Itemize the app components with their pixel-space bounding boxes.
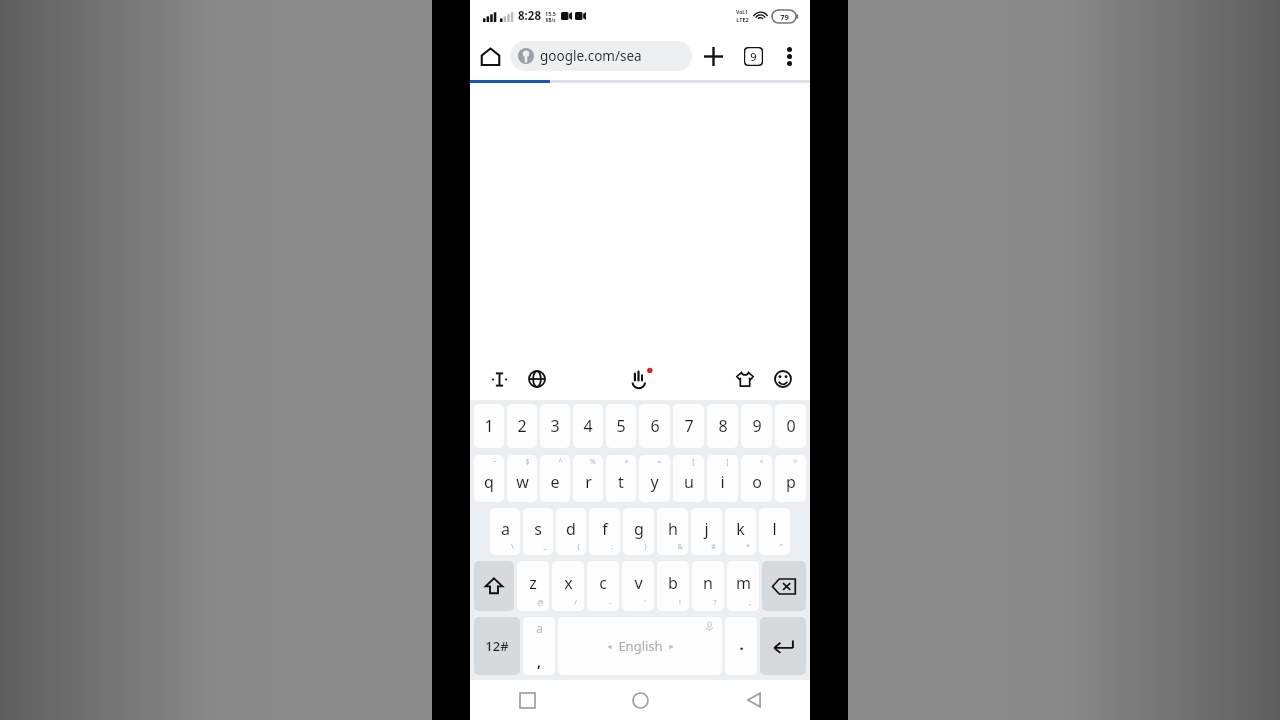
staticText: . (739, 634, 744, 654)
button[interactable]: s (523, 508, 553, 555)
staticText: \ (511, 542, 514, 552)
button[interactable]: New tab (692, 35, 734, 77)
button[interactable]: More options (772, 39, 806, 73)
staticText: 9 (750, 49, 757, 64)
button[interactable]: 1 (474, 404, 504, 448)
button[interactable]: a (490, 508, 520, 555)
staticText: $ (525, 457, 530, 467)
button[interactable]: Tabs: 9 (734, 37, 772, 75)
button[interactable]: Home (584, 680, 697, 720)
staticText: u (684, 471, 694, 493)
button[interactable]: Recents (470, 680, 584, 720)
staticText: ( (577, 542, 580, 552)
button[interactable]: k (725, 508, 756, 555)
staticText: r (585, 471, 592, 493)
button[interactable]: Handwriting (624, 362, 658, 396)
staticText: b (668, 572, 678, 594)
staticText: ; (749, 598, 751, 608)
button[interactable]: m (727, 561, 759, 611)
staticText: < (759, 457, 764, 467)
staticText: [ (692, 457, 695, 467)
button[interactable]: n (692, 561, 724, 611)
button[interactable]: ~ (474, 455, 504, 502)
button[interactable]: Backspace (762, 561, 806, 611)
button[interactable]: 3 (540, 404, 570, 448)
staticText: a (501, 518, 510, 540)
button[interactable]: Back (697, 680, 810, 720)
button[interactable]: Shift (474, 561, 514, 611)
staticText: p (786, 471, 796, 493)
staticText: ~ (492, 457, 497, 467)
staticText: LTE2 (736, 16, 749, 23)
button[interactable]: Text cursor (484, 364, 514, 394)
button[interactable]: 6 (639, 404, 670, 448)
button[interactable]: ^ (540, 455, 570, 502)
staticText: 7 (684, 415, 694, 437)
button[interactable]: 8 (707, 404, 738, 448)
staticText: c (599, 572, 607, 594)
staticText: ^ (558, 457, 563, 467)
button[interactable]: g (623, 508, 654, 555)
staticText: i (720, 471, 725, 493)
staticText: ◂ (607, 642, 612, 651)
button[interactable]: > (775, 455, 806, 502)
button[interactable]: c (587, 561, 619, 611)
button[interactable]: Language (522, 364, 552, 394)
button[interactable]: 4 (573, 404, 603, 448)
button[interactable]: 5 (606, 404, 636, 448)
button[interactable]: = (639, 455, 670, 502)
button[interactable]: Enter (760, 617, 806, 675)
button[interactable]: 7 (673, 404, 704, 448)
button[interactable]: x (552, 561, 584, 611)
button[interactable]: Emoji (768, 364, 798, 394)
staticText: z (529, 572, 537, 594)
button[interactable]: h (657, 508, 688, 555)
staticText: y (650, 471, 659, 493)
staticText: x (564, 572, 573, 594)
staticText: google.com/sea (540, 47, 642, 65)
staticText: l (772, 518, 777, 540)
button[interactable]: < (741, 455, 772, 502)
button[interactable]: + (606, 455, 636, 502)
staticText: n (703, 572, 713, 594)
staticText: w (516, 471, 529, 493)
staticText: & (677, 542, 683, 552)
button[interactable]: [ (673, 455, 704, 502)
staticText: o (752, 471, 762, 493)
button[interactable]: d (556, 508, 586, 555)
staticText: ! (679, 598, 681, 608)
staticText: , (537, 652, 541, 671)
staticText: 12# (485, 637, 509, 655)
button[interactable]: Space, English (558, 617, 722, 675)
button[interactable]: j (691, 508, 722, 555)
button[interactable]: Home (470, 36, 510, 76)
staticText: English (618, 637, 663, 655)
button[interactable]: Themes (730, 364, 760, 394)
button[interactable]: 2 (507, 404, 537, 448)
button[interactable]: 9 (741, 404, 772, 448)
button[interactable]: z (517, 561, 549, 611)
button[interactable]: a (523, 617, 555, 675)
button[interactable]: google.com/sea (510, 41, 692, 71)
staticText: 6 (650, 415, 660, 437)
staticText: m (736, 572, 751, 594)
button[interactable]: 0 (775, 404, 806, 448)
button[interactable]: l (759, 508, 790, 555)
button[interactable]: 12# (474, 617, 520, 675)
staticText: = (657, 457, 662, 467)
staticText: # (711, 542, 716, 552)
button[interactable]: ] (707, 455, 738, 502)
staticText: ▸ (669, 642, 674, 651)
staticText: ? (713, 598, 717, 608)
staticText: 1 (484, 415, 494, 437)
button[interactable]: v (622, 561, 654, 611)
button[interactable]: b (657, 561, 689, 611)
button[interactable]: f (589, 508, 620, 555)
staticText: 4 (583, 415, 593, 437)
button[interactable]: . (725, 617, 757, 675)
staticText: a (536, 620, 543, 636)
button[interactable]: % (573, 455, 603, 502)
button[interactable]: $ (507, 455, 537, 502)
staticText: : (611, 542, 613, 552)
staticText: t (618, 471, 624, 493)
